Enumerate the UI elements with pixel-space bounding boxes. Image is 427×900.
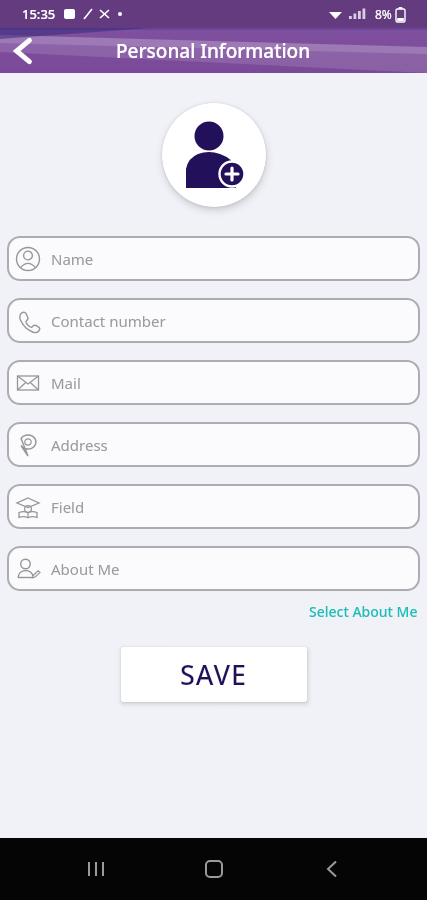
button[interactable]: Select About Me [309,602,418,621]
button[interactable] [13,39,33,63]
staticText: 15:35 [22,5,56,23]
staticText: About Me [51,559,120,579]
button[interactable]: SAVE [121,647,307,702]
staticText: 8% [375,6,392,22]
staticText: SAVE [180,656,248,693]
staticText: Mail [51,373,81,393]
button[interactable]: About Me [7,546,420,591]
button[interactable]: Contact number [7,298,420,343]
button[interactable]: Name [7,236,420,281]
staticText: Contact number [51,311,166,331]
button[interactable]: Field [7,484,420,529]
button[interactable]: Mail [7,360,420,405]
staticText: Name [51,249,94,269]
button[interactable] [162,103,266,207]
staticText: Personal Information [116,38,311,64]
staticText: Address [51,435,108,455]
staticText: Field [51,497,85,517]
button[interactable] [184,839,244,899]
button[interactable]: Address [7,422,420,467]
button[interactable] [302,839,362,899]
button[interactable] [66,839,126,899]
